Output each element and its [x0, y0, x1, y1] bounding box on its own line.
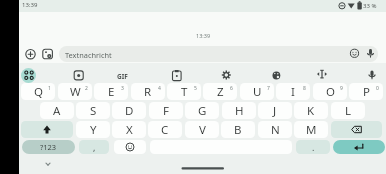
button[interactable]	[59, 46, 378, 62]
button[interactable]: S	[76, 102, 110, 119]
staticText: .	[312, 141, 315, 153]
staticText: U	[253, 84, 262, 100]
button[interactable]: J	[258, 102, 292, 119]
button[interactable]: T	[167, 83, 201, 100]
staticText: D	[125, 103, 134, 119]
button[interactable]: I	[276, 83, 310, 100]
button[interactable]: ?123	[22, 140, 75, 154]
button[interactable]: O	[313, 83, 347, 100]
staticText: Z	[217, 84, 224, 100]
button[interactable]: N	[258, 121, 292, 138]
staticText: F	[163, 103, 169, 119]
button[interactable]: A	[40, 102, 74, 119]
button[interactable]: .	[296, 140, 330, 154]
staticText: 8	[303, 85, 306, 92]
staticText: 33 %	[363, 2, 377, 10]
staticText: GIF	[117, 72, 128, 81]
button[interactable]: D	[112, 102, 146, 119]
staticText: R	[144, 84, 152, 100]
staticText: J	[273, 103, 277, 119]
button[interactable]: C	[148, 121, 182, 138]
button[interactable]: B	[221, 121, 255, 138]
staticText: M	[306, 122, 317, 138]
button[interactable]: P	[349, 83, 383, 100]
staticText: 1	[48, 85, 51, 92]
staticText: K	[307, 103, 315, 119]
staticText: 3	[121, 85, 124, 92]
button[interactable]: X	[112, 121, 146, 138]
staticText: G	[198, 103, 207, 119]
staticText: E	[108, 84, 115, 100]
staticText: S	[90, 103, 97, 119]
staticText: O	[326, 84, 335, 100]
button[interactable]: Q	[21, 83, 55, 100]
staticText: H	[235, 103, 244, 119]
button[interactable]: K	[294, 102, 328, 119]
button[interactable]: M	[294, 121, 328, 138]
button[interactable]: W	[58, 83, 92, 100]
button[interactable]: L	[331, 102, 365, 119]
button[interactable]: Z	[203, 83, 237, 100]
staticText: A	[53, 103, 61, 119]
staticText: 9	[340, 85, 343, 92]
button[interactable]: H	[222, 102, 256, 119]
staticText: 6	[230, 85, 233, 92]
button[interactable]	[21, 68, 36, 83]
staticText: 7	[267, 85, 270, 92]
button[interactable]	[331, 121, 382, 138]
button[interactable]: F	[149, 102, 183, 119]
staticText: Y	[90, 122, 97, 138]
button[interactable]: G	[185, 102, 219, 119]
button[interactable]	[333, 140, 385, 154]
staticText: 2	[85, 85, 88, 92]
staticText: C	[161, 122, 169, 138]
button[interactable]: Y	[76, 121, 110, 138]
staticText: 0	[376, 85, 379, 92]
staticText: V	[199, 122, 206, 138]
button[interactable]	[21, 121, 73, 138]
staticText: B	[234, 122, 242, 138]
staticText: X	[126, 122, 133, 138]
button[interactable]: E	[94, 83, 128, 100]
staticText: 4	[158, 85, 161, 92]
staticText: W	[70, 84, 81, 100]
button[interactable]: ,	[79, 140, 109, 154]
staticText: Q	[34, 84, 43, 100]
button[interactable]: V	[185, 121, 219, 138]
button[interactable]: R	[131, 83, 165, 100]
staticText: ,	[93, 141, 96, 153]
staticText: P	[363, 84, 370, 100]
staticText: I	[291, 84, 295, 100]
staticText: 13:39	[196, 32, 211, 39]
staticText: N	[271, 122, 280, 138]
button[interactable]	[114, 140, 146, 154]
staticText: L	[345, 103, 352, 119]
staticText: 5	[194, 85, 197, 92]
staticText: Textnachricht	[65, 50, 112, 60]
button[interactable]: U	[240, 83, 274, 100]
staticText: ?123	[40, 142, 57, 152]
staticText: 13:39	[22, 1, 38, 9]
staticText: T	[181, 84, 188, 100]
